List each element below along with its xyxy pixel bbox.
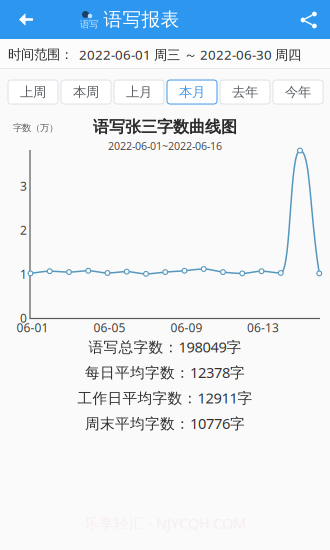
staticText: 上月	[126, 84, 152, 100]
button[interactable]: 去年	[220, 80, 270, 104]
staticText: 06-09	[170, 319, 202, 335]
button[interactable]: 本月	[167, 80, 217, 104]
staticText: 乐享轻汇 · NJYCQH.COM	[84, 513, 246, 533]
staticText: 0	[20, 310, 27, 326]
staticText: 2	[20, 222, 27, 238]
staticText: 时间范围：	[8, 46, 73, 63]
staticText: 2022-06-01~2022-06-16	[108, 139, 222, 153]
staticText: 语写报表	[103, 8, 179, 31]
staticText: 2022-06-01 周三 ～ 2022-06-30 周四	[73, 46, 301, 63]
staticText: 1	[20, 266, 27, 282]
staticText: 语写张三字数曲线图	[93, 117, 237, 137]
button[interactable]: Back	[6, 0, 46, 39]
staticText: 工作日平均字数：12911字	[77, 388, 252, 407]
staticText: 每日平均字数：12378字	[85, 362, 245, 382]
staticText: 字数（万）	[13, 122, 58, 134]
button[interactable]: 本周	[61, 80, 111, 104]
staticText: 06-13	[247, 319, 279, 335]
button[interactable]: 上周	[8, 80, 58, 104]
button[interactable]: Share	[289, 0, 329, 39]
staticText: 上周	[20, 84, 46, 100]
staticText: 06-01	[16, 319, 48, 335]
staticText: 语写总字数：198049字	[88, 337, 241, 356]
staticText: 本月	[179, 84, 205, 100]
staticText: 去年	[232, 84, 258, 100]
staticText: 语写	[80, 19, 98, 30]
button[interactable]: 今年	[273, 80, 323, 104]
button[interactable]: 上月	[114, 80, 164, 104]
staticText: 今年	[285, 84, 311, 100]
staticText: 06-05	[93, 319, 125, 335]
staticText: 本周	[73, 84, 99, 100]
staticText: 3	[20, 178, 27, 194]
staticText: 周末平均字数：10776字	[85, 413, 245, 433]
